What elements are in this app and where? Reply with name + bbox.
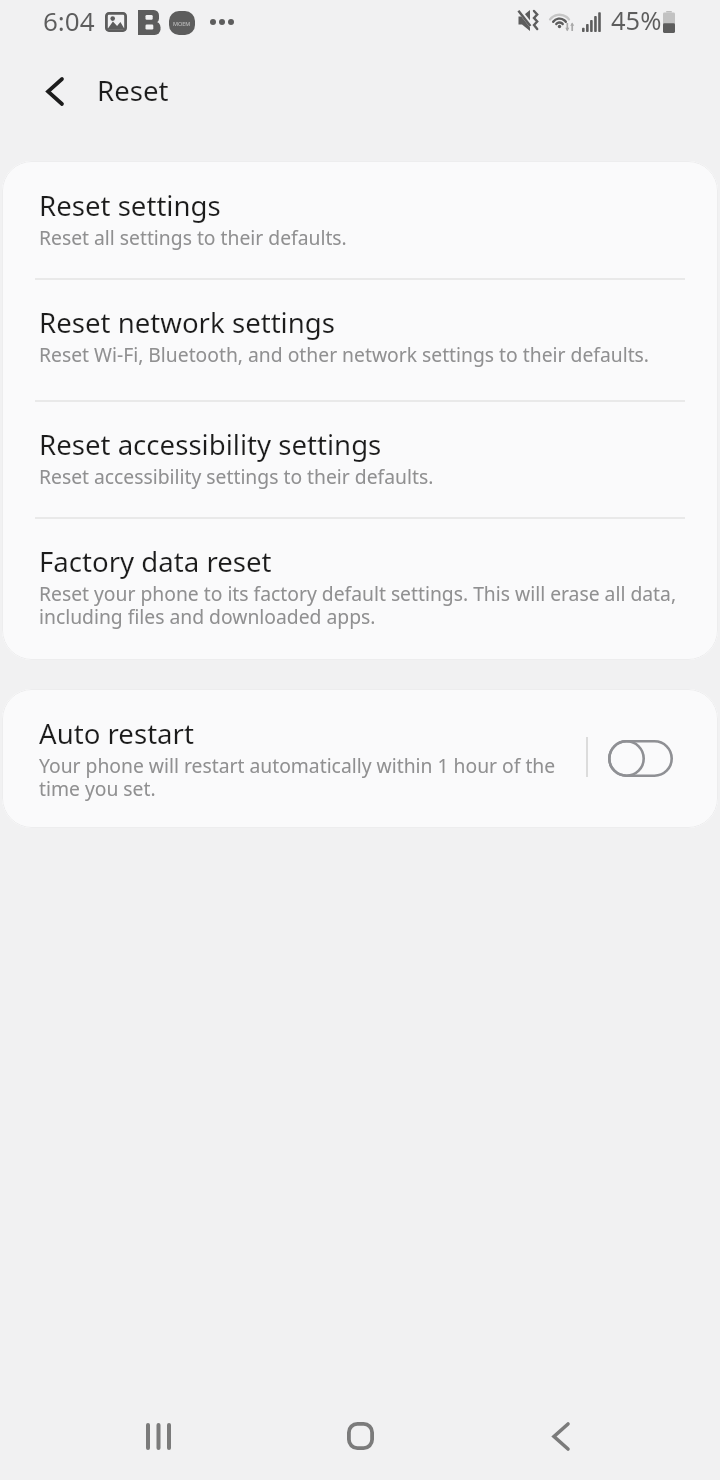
staticText: Your phone will restart automatically wi… [39,755,596,801]
button[interactable]: Home [312,1392,408,1480]
staticText: Reset all settings to their defaults. [39,227,347,250]
button[interactable]: Reset network settings [2,278,718,400]
staticText: Reset your phone to its factory default … [39,583,718,629]
staticText: 6:04 [43,3,95,38]
staticText: Reset accessibility settings [39,425,382,463]
button[interactable]: Recent apps [110,1392,206,1480]
button[interactable]: Factory data reset [2,517,718,660]
staticText: Factory data reset [39,542,272,580]
button[interactable]: Auto restart [586,689,714,828]
button[interactable]: Navigate up [15,55,95,127]
staticText: 45% [611,3,662,38]
button[interactable]: Reset accessibility settings [2,400,718,517]
staticText: Reset [97,71,169,109]
staticText: Reset accessibility settings to their de… [39,466,434,489]
button[interactable]: Back [513,1392,609,1480]
staticText: MOEM [173,20,191,27]
staticText: Reset Wi-Fi, Bluetooth, and other networ… [39,344,650,367]
staticText: Reset network settings [39,303,335,341]
staticText: Auto restart [39,714,194,752]
button[interactable]: Auto restart [2,689,584,828]
staticText: Reset settings [39,186,221,224]
button[interactable]: Reset settings [2,161,718,278]
